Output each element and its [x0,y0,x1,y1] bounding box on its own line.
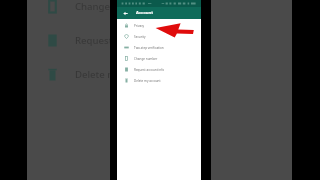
button[interactable]: Two-step verification [117,42,201,53]
staticText: Request account info [75,34,172,47]
staticText: Change number [75,0,150,13]
button[interactable]: Privacy [117,20,201,31]
button[interactable]: Change number [117,53,201,64]
staticText: Delete my account [134,79,161,83]
button[interactable]: Delete my account [117,75,201,86]
staticText: Privacy [134,24,145,28]
button[interactable]: Security [117,31,201,42]
button[interactable]: Request account info [117,64,201,75]
button[interactable]: Back [122,10,129,17]
staticText: Change number [134,57,158,61]
staticText: Security [134,35,146,39]
staticText: Request account info [134,68,165,72]
staticText: Delete my account [75,68,161,81]
staticText: Two-step verification [134,46,164,50]
staticText: Account [136,10,154,16]
